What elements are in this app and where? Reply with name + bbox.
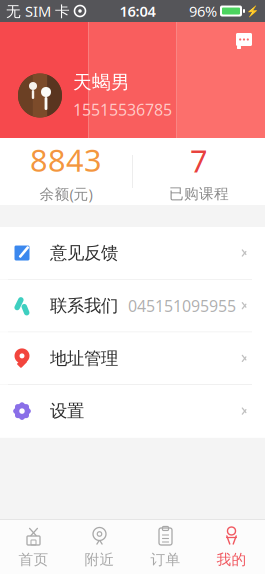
staticText: 7	[190, 140, 208, 181]
staticText: 8843	[30, 139, 102, 180]
staticText: 附近	[84, 550, 114, 568]
staticText: 无 SIM 卡	[6, 1, 70, 21]
staticText: 地址管理	[50, 348, 118, 369]
staticText: 订单	[150, 550, 180, 568]
button[interactable]: 地址管理	[0, 332, 265, 385]
staticText: 首页	[18, 550, 48, 568]
staticText: 16:04	[119, 1, 155, 21]
staticText: 联系我们	[50, 295, 118, 316]
staticText: 已购课程	[169, 185, 229, 203]
button[interactable]: 联系我们	[0, 280, 265, 332]
staticText: ⚡	[246, 5, 259, 17]
button[interactable]: Messages	[231, 29, 257, 53]
button[interactable]: 意见反馈	[0, 227, 265, 280]
staticText: 96%	[189, 1, 217, 21]
staticText: 我的	[216, 550, 246, 568]
button[interactable]: 首页	[0, 520, 66, 574]
staticText: 天蝎男	[73, 71, 130, 94]
staticText: 045151095955	[128, 295, 236, 316]
button[interactable]: 设置	[0, 385, 265, 438]
staticText: 设置	[50, 400, 84, 422]
button[interactable]: 我的	[198, 520, 264, 574]
button[interactable]: 附近	[66, 520, 132, 574]
staticText: 意见反馈	[50, 242, 118, 264]
staticText: 余额(元)	[39, 184, 92, 204]
staticText: 15515536785	[73, 99, 172, 120]
button[interactable]: 订单	[132, 520, 198, 574]
